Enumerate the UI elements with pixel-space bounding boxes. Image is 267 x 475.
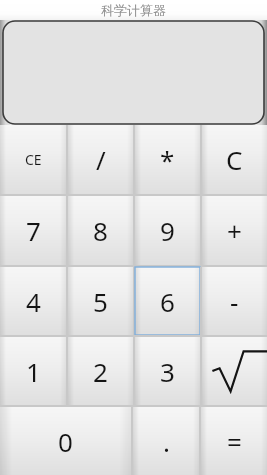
button[interactable]: 0	[0, 407, 131, 475]
staticText: 科学计算器	[101, 2, 166, 18]
button[interactable]: 8	[68, 196, 133, 265]
button[interactable]: Square root	[202, 337, 267, 405]
staticText: 3	[160, 354, 175, 389]
button[interactable]: 4	[0, 267, 66, 335]
button[interactable]: 2	[68, 337, 133, 405]
staticText: 8	[93, 213, 108, 248]
button[interactable]: =	[201, 407, 267, 475]
button[interactable]: .	[133, 407, 199, 475]
button[interactable]: 6	[135, 267, 200, 335]
button[interactable]: -	[202, 267, 267, 335]
button[interactable]: 5	[68, 267, 133, 335]
button[interactable]: 3	[135, 337, 200, 405]
button[interactable]: CE	[0, 125, 66, 194]
staticText: 1	[26, 354, 41, 389]
staticText: 7	[26, 213, 41, 248]
staticText: 4	[26, 284, 41, 319]
staticText: +	[227, 213, 242, 248]
button[interactable]: C	[202, 125, 267, 194]
staticText: =	[227, 424, 242, 459]
button[interactable]: +	[202, 196, 267, 265]
staticText: CE	[25, 150, 42, 169]
staticText: -	[230, 284, 239, 319]
button[interactable]: /	[68, 125, 133, 194]
staticText: 0	[58, 424, 73, 459]
button[interactable]: *	[135, 125, 200, 194]
staticText: 2	[93, 354, 108, 389]
button[interactable]: 9	[135, 196, 200, 265]
button[interactable]: 7	[0, 196, 66, 265]
staticText: /	[96, 142, 106, 177]
staticText: 6	[160, 284, 175, 319]
staticText: 9	[160, 213, 175, 248]
button[interactable]: 1	[0, 337, 66, 405]
staticText: .	[163, 424, 170, 459]
staticText: *	[160, 142, 175, 177]
staticText: 5	[93, 284, 108, 319]
staticText: C	[226, 142, 243, 177]
